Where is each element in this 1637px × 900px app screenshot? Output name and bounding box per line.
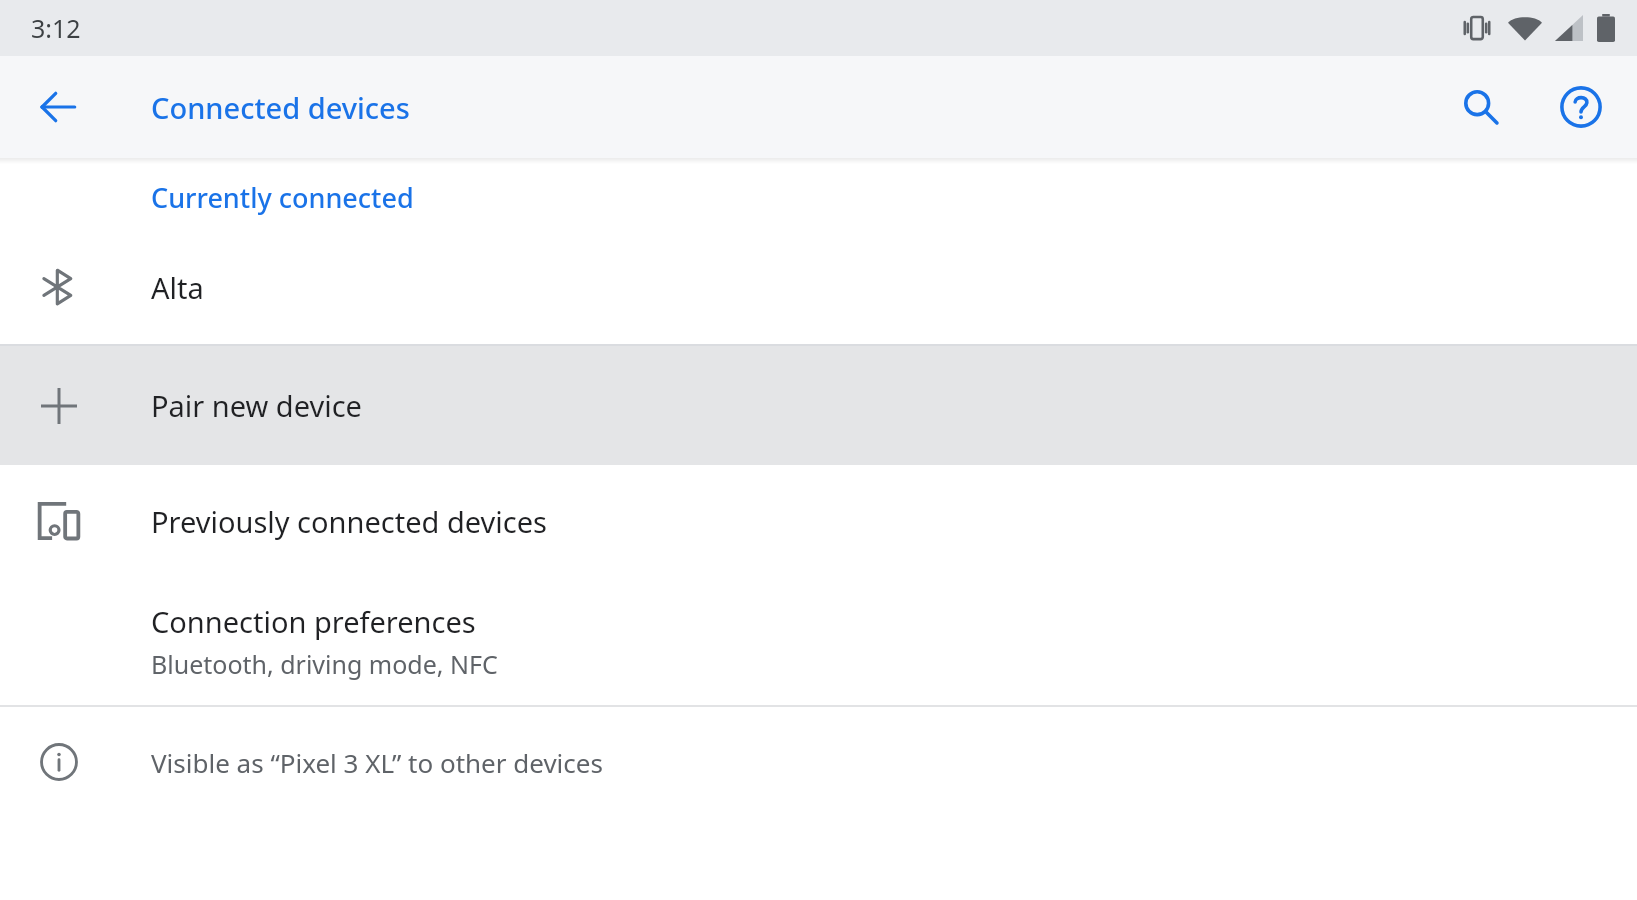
staticText: Currently connected [151,179,414,216]
staticText: Connected devices [151,88,410,127]
staticText: Alta [151,268,204,307]
staticText: Connection preferences [151,602,476,641]
button[interactable]: Pair new device [0,346,1637,465]
staticText: Previously connected devices [151,502,547,541]
button[interactable]: Search [1445,71,1517,143]
button[interactable]: Back [22,71,94,143]
staticText: Pair new device [151,386,362,425]
button[interactable]: Previously connected devices [0,465,1637,577]
button[interactable]: Alta [0,230,1637,344]
staticText: Bluetooth, driving mode, NFC [151,647,498,681]
staticText: Visible as “Pixel 3 XL” to other devices [151,745,603,780]
button[interactable]: Help [1545,71,1617,143]
staticText: 3:12 [31,11,81,45]
button[interactable]: Connection preferences [0,577,1637,705]
